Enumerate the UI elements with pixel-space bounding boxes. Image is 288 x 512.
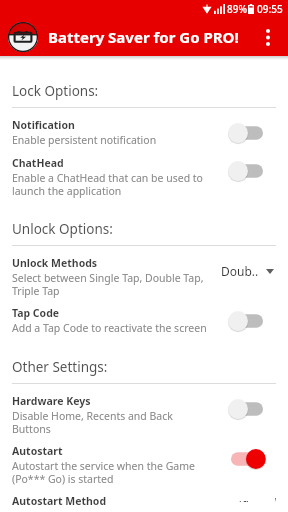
staticText: Hardware Keys — [12, 394, 91, 408]
button[interactable]: Toggle on — [227, 446, 267, 472]
staticText: Select between Single Tap, Double Tap, T… — [12, 271, 210, 298]
button[interactable]: Doub.. — [219, 259, 276, 283]
staticText: Other Settings: — [12, 358, 108, 376]
button[interactable]: Autostart Method — [0, 492, 288, 512]
staticText: Battery Saver for Go PRO! — [48, 27, 239, 47]
button[interactable]: Notifica.. — [216, 494, 278, 506]
staticText: Add a Tap Code to reactivate the screen — [12, 321, 207, 335]
staticText: 89% — [227, 2, 247, 16]
staticText: Enable a ChatHead that can be used to la… — [12, 171, 210, 198]
staticText: Disable Home, Recents and Back Buttons — [12, 409, 210, 436]
button[interactable]: Notification — [0, 116, 288, 154]
staticText: Autostart Method — [12, 494, 107, 506]
staticText: Unlock Options: — [12, 220, 113, 238]
staticText: Tap Code — [12, 306, 60, 320]
button[interactable]: Autostart — [0, 442, 288, 492]
staticText: Notifica.. — [218, 498, 268, 502]
staticText: Enable persistent notification — [12, 133, 157, 147]
button[interactable]: Toggle off — [227, 308, 267, 334]
staticText: Doub.. — [221, 263, 259, 279]
staticText: Lock Options: — [12, 82, 99, 100]
staticText: ChatHead — [12, 156, 64, 170]
button[interactable]: More options — [252, 21, 284, 53]
button[interactable]: ChatHead — [0, 154, 288, 204]
button[interactable]: Tap Code — [0, 304, 288, 342]
button[interactable]: Toggle off — [227, 120, 267, 146]
staticText: Unlock Methods — [12, 256, 98, 270]
staticText: Autostart the service when the Game (Po*… — [12, 459, 210, 486]
staticText: 09:55 — [257, 2, 283, 16]
button[interactable]: Toggle off — [227, 158, 267, 184]
button[interactable]: Toggle off — [227, 396, 267, 422]
button[interactable]: Hardware Keys — [0, 392, 288, 442]
staticText: Autostart — [12, 444, 63, 458]
button[interactable]: Unlock Methods — [0, 254, 288, 304]
staticText: Notification — [12, 118, 75, 132]
